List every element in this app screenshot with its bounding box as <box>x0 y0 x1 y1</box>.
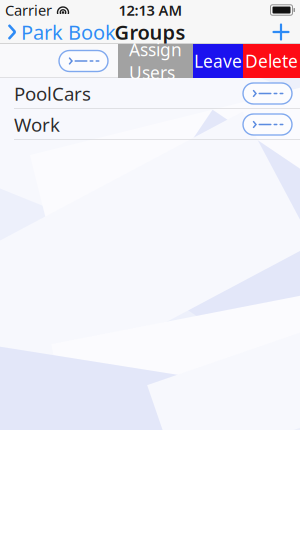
button[interactable]: Park Book <box>0 15 116 49</box>
button[interactable]: Delete <box>243 44 300 78</box>
staticText: PoolCars <box>14 81 91 106</box>
staticText: Assign Users <box>129 38 182 84</box>
staticText: Work <box>14 112 60 137</box>
staticText: Carrier <box>5 0 52 20</box>
staticText: 12:13 AM <box>118 0 182 20</box>
staticText: Groups <box>114 19 185 45</box>
button[interactable]: Leave <box>193 44 243 78</box>
staticText: Park Book <box>21 19 116 45</box>
button[interactable]: Add Group <box>270 21 300 43</box>
button[interactable]: PoolCars <box>0 78 300 109</box>
staticText: Delete <box>245 49 298 72</box>
button[interactable]: Assign Users <box>118 44 193 78</box>
button[interactable]: Work <box>0 109 300 140</box>
staticText: Leave <box>194 49 242 72</box>
